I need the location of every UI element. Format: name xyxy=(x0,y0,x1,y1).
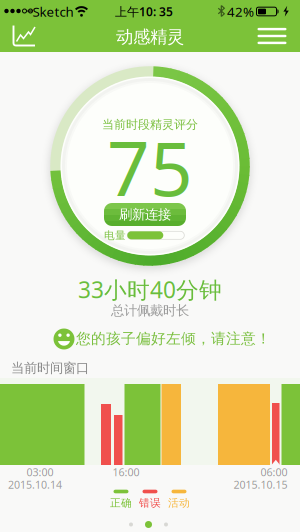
staticText: 总计佩戴时长 xyxy=(111,302,189,319)
staticText: 06:00 xyxy=(260,465,287,479)
button[interactable]: 刷新连接 xyxy=(104,203,186,226)
staticText: 错误 xyxy=(139,496,161,509)
staticText: 刷新连接 xyxy=(119,206,171,223)
staticText: 上午10: 35 xyxy=(115,3,173,19)
staticText: 75 xyxy=(107,117,193,217)
staticText: 33小时40分钟 xyxy=(78,274,222,304)
staticText: 电量 xyxy=(104,229,126,242)
button[interactable]: 菜单 xyxy=(254,20,290,52)
button[interactable]: 图表 xyxy=(6,20,42,52)
staticText: 16:00 xyxy=(112,465,139,479)
staticText: 您的孩子偏好左倾，请注意！ xyxy=(76,329,271,347)
staticText: 正确 xyxy=(110,496,132,509)
staticText: 2015.10.14 xyxy=(8,477,62,492)
staticText: 03:00 xyxy=(26,465,53,479)
staticText: 当前时间窗口 xyxy=(11,360,89,376)
staticText: 活动 xyxy=(168,496,190,509)
staticText: Sketch xyxy=(32,3,73,20)
staticText: 42% xyxy=(227,3,254,20)
staticText: 当前时段精灵评分 xyxy=(102,117,198,132)
staticText: 2015.10.15 xyxy=(233,477,287,492)
staticText: 动感精灵 xyxy=(116,26,184,48)
